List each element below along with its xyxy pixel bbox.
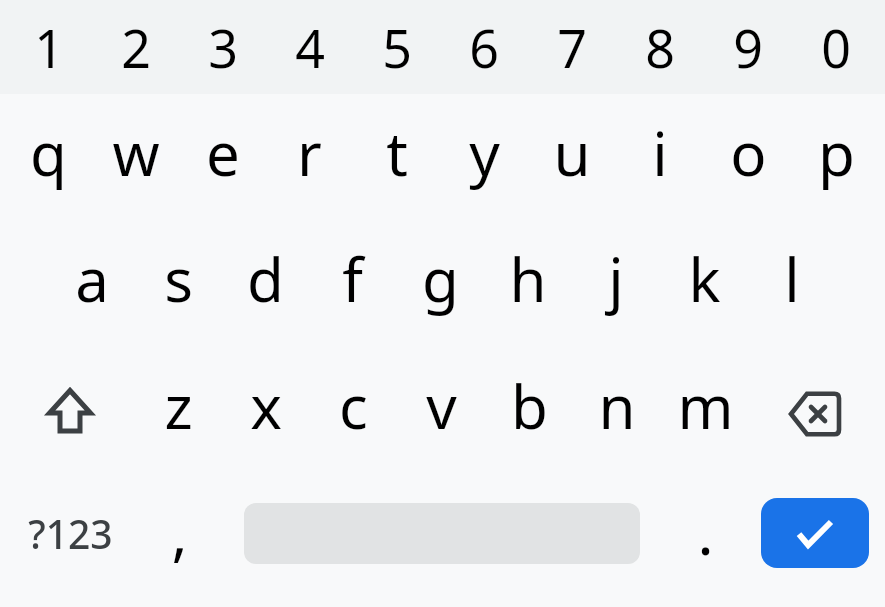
button[interactable]: p [792, 94, 880, 222]
button[interactable]: u [528, 94, 616, 222]
staticText: y [469, 112, 500, 194]
staticText: q [30, 112, 67, 194]
staticText: , [171, 491, 188, 573]
button[interactable]: Backspace [749, 350, 880, 478]
staticText: l [784, 238, 800, 320]
staticText: n [598, 365, 636, 447]
button[interactable]: m [661, 350, 749, 478]
staticText: 8 [645, 12, 675, 83]
staticText: 1 [34, 12, 64, 83]
button[interactable]: i [616, 94, 704, 222]
staticText: u [553, 112, 591, 194]
staticText: t [386, 112, 408, 194]
button[interactable]: w [92, 94, 179, 222]
staticText: 3 [208, 12, 238, 83]
staticText: e [206, 112, 240, 194]
button[interactable]: a [48, 222, 135, 350]
button[interactable]: x [222, 350, 309, 478]
staticText: h [509, 238, 547, 320]
button[interactable]: d [222, 222, 309, 350]
button[interactable]: t [353, 94, 440, 222]
staticText: k [688, 238, 721, 320]
button[interactable]: 8 [616, 0, 704, 94]
staticText: d [247, 238, 284, 320]
staticText: b [511, 365, 548, 447]
button[interactable]: 4 [266, 0, 353, 94]
staticText: i [652, 112, 668, 194]
button[interactable]: y [440, 94, 528, 222]
staticText: . [697, 491, 714, 573]
button[interactable]: o [704, 94, 792, 222]
staticText: a [75, 238, 109, 320]
staticText: m [677, 365, 734, 447]
button[interactable]: s [135, 222, 222, 350]
staticText: g [422, 238, 459, 320]
button[interactable]: 2 [92, 0, 179, 94]
button[interactable]: 1 [5, 0, 92, 94]
staticText: z [164, 365, 193, 447]
staticText: x [250, 365, 282, 447]
staticText: 5 [382, 12, 412, 83]
button[interactable]: j [572, 222, 660, 350]
staticText: 2 [121, 12, 151, 83]
button[interactable]: f [309, 222, 396, 350]
button[interactable]: , [135, 478, 223, 588]
button[interactable]: g [396, 222, 484, 350]
staticText: 7 [557, 12, 587, 83]
staticText: 6 [469, 12, 499, 83]
staticText: 4 [295, 12, 325, 83]
button[interactable]: z [135, 350, 222, 478]
button[interactable]: h [484, 222, 572, 350]
button[interactable]: c [309, 350, 397, 478]
button[interactable]: 6 [440, 0, 528, 94]
button[interactable]: b [485, 350, 573, 478]
staticText: s [164, 238, 193, 320]
button[interactable]: 0 [792, 0, 880, 94]
button[interactable]: 7 [528, 0, 616, 94]
staticText: f [342, 238, 363, 320]
staticText: 0 [821, 12, 851, 83]
button[interactable]: n [573, 350, 661, 478]
staticText: v [426, 365, 457, 447]
button[interactable]: q [5, 94, 92, 222]
button[interactable]: 9 [704, 0, 792, 94]
staticText: j [608, 238, 624, 320]
button[interactable]: . [661, 478, 749, 588]
staticText: o [730, 112, 767, 194]
staticText: ?123 [28, 507, 113, 560]
button[interactable]: r [266, 94, 353, 222]
button[interactable]: e [179, 94, 266, 222]
button[interactable]: 5 [353, 0, 440, 94]
staticText: c [339, 365, 368, 447]
button[interactable]: Shift [5, 350, 135, 478]
button[interactable]: ?123 [5, 478, 135, 588]
staticText: r [297, 112, 322, 194]
button[interactable]: k [660, 222, 748, 350]
button[interactable]: l [748, 222, 836, 350]
button[interactable]: v [397, 350, 485, 478]
button[interactable]: 3 [179, 0, 266, 94]
staticText: 9 [733, 12, 763, 83]
staticText: p [818, 112, 855, 194]
button[interactable]: Enter [761, 498, 869, 568]
staticText: w [112, 112, 160, 194]
